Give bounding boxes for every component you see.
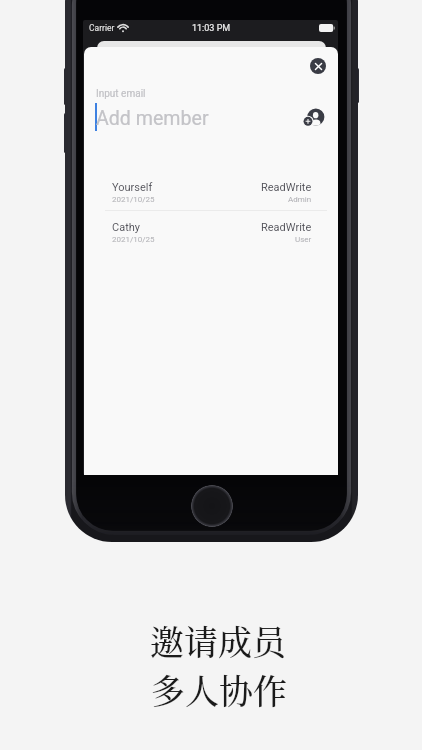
staticText: Carrier [89,23,115,33]
staticText: ReadWrite [261,221,312,234]
staticText: User [295,235,312,244]
staticText: Add member [96,107,209,130]
staticText: 2021/10/25 [112,235,155,244]
staticText: 2021/10/25 [112,195,155,204]
staticText: ReadWrite [261,181,312,194]
staticText: 多人协作 [151,665,287,714]
staticText: 11:03 PM [192,23,231,34]
staticText: Admin [288,195,312,204]
button[interactable]: Add member [302,104,327,129]
staticText: 邀请成员 [150,616,286,665]
staticText: Input email [96,88,146,100]
staticText: Cathy [112,221,141,234]
button[interactable]: Yourself [84,172,338,212]
button[interactable]: Cathy [84,212,338,252]
button[interactable]: Close [310,58,326,74]
staticText: Yourself [112,181,153,194]
